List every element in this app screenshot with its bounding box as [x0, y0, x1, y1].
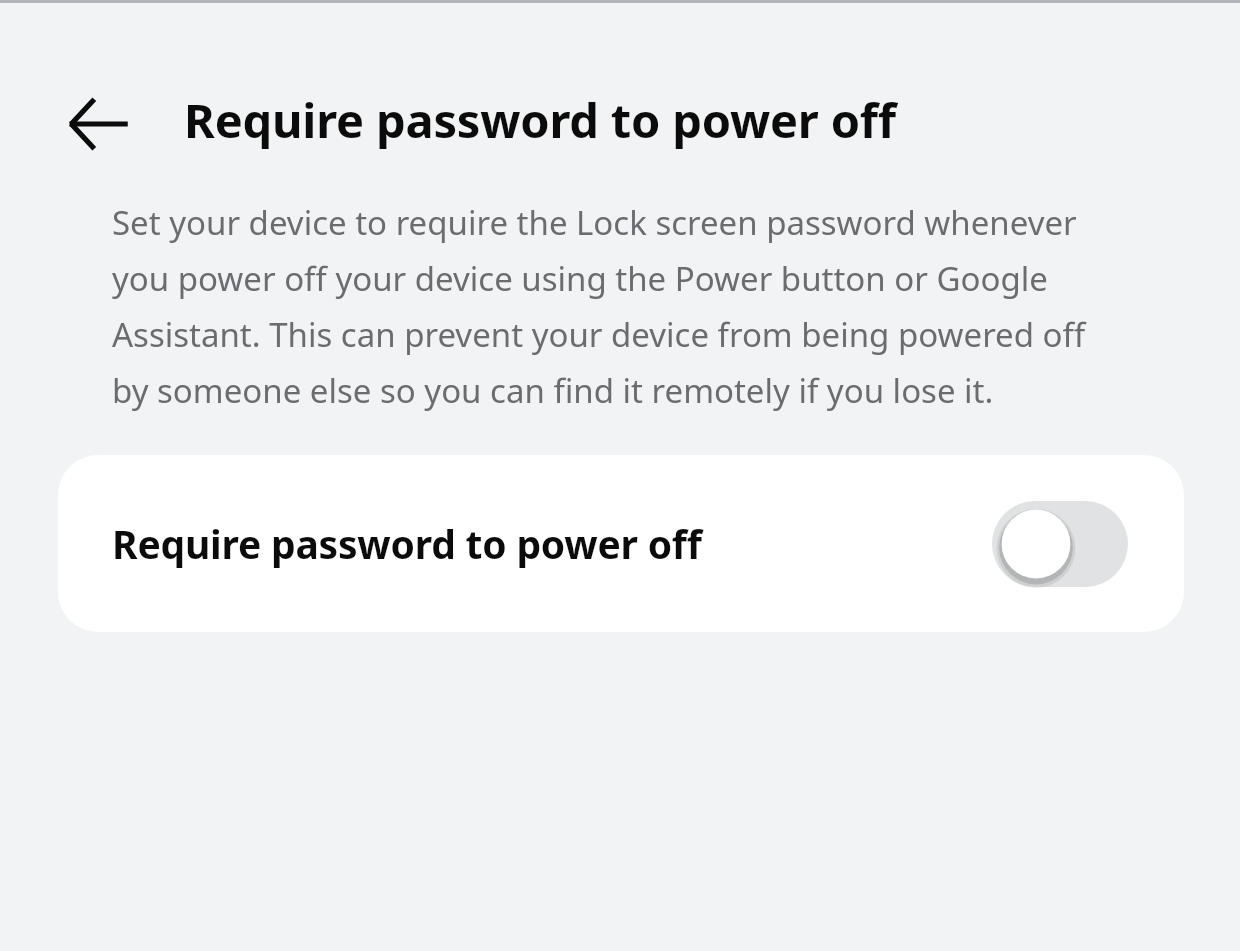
staticText: Require password to power off — [184, 88, 896, 152]
button[interactable]: Back — [50, 76, 146, 172]
staticText: Require password to power off — [112, 517, 978, 570]
staticText: Set your device to require the Lock scre… — [112, 200, 1130, 413]
button[interactable]: Require password to power off — [58, 455, 1184, 632]
button[interactable]: Require password to power off toggle — [992, 501, 1128, 587]
